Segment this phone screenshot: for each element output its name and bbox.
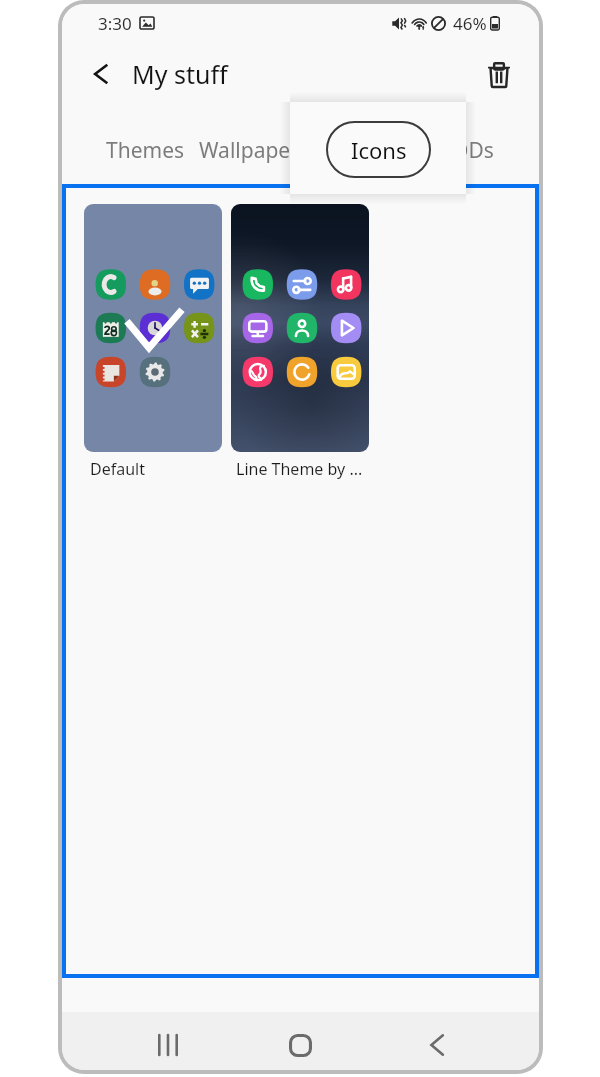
staticText: Icons bbox=[333, 136, 386, 165]
button[interactable]: Back bbox=[407, 1016, 467, 1070]
button[interactable] bbox=[231, 204, 369, 452]
staticText: 3:30 bbox=[98, 12, 132, 35]
staticText: Themes bbox=[106, 136, 185, 165]
button[interactable]: Recents bbox=[138, 1016, 198, 1070]
button[interactable]: Home bbox=[270, 1016, 330, 1070]
button[interactable] bbox=[84, 204, 222, 452]
button[interactable]: Wallpapers bbox=[199, 112, 306, 188]
staticText: 46% bbox=[453, 12, 487, 35]
staticText: Default bbox=[90, 458, 145, 480]
button[interactable]: Icons bbox=[306, 112, 413, 188]
staticText: Wallpapers bbox=[199, 136, 306, 165]
button[interactable]: Delete bbox=[478, 53, 520, 95]
staticText: AODs bbox=[439, 136, 494, 165]
button[interactable]: Icons bbox=[326, 121, 431, 178]
staticText: My stuff bbox=[132, 57, 228, 91]
button[interactable]: AODs bbox=[413, 112, 520, 188]
button[interactable]: Themes bbox=[92, 112, 199, 188]
staticText: Line Theme by ... bbox=[236, 458, 363, 480]
button[interactable]: Back bbox=[82, 55, 120, 93]
staticText: Icons bbox=[351, 135, 407, 165]
